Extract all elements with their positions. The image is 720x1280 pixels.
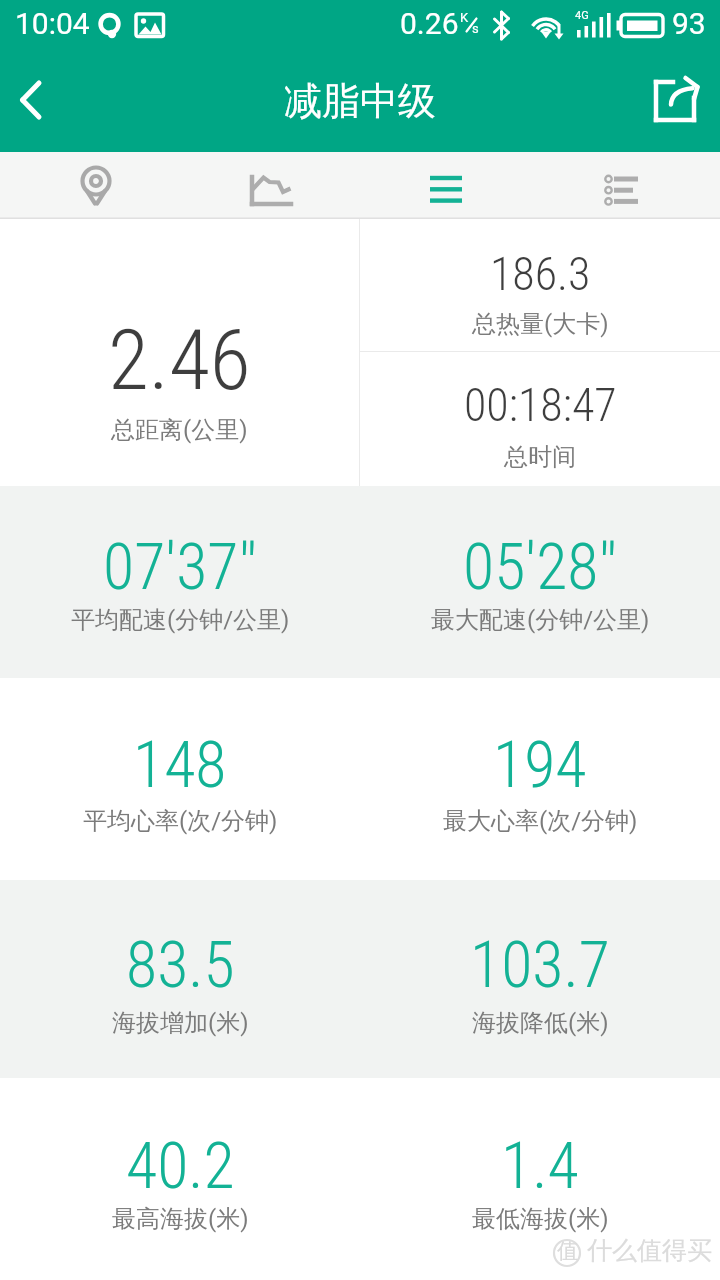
staticText: 总热量(大卡) [472,309,609,339]
staticText: 海拔降低(米) [472,1008,609,1038]
staticText: 103.7 [470,928,610,1003]
staticText: 值 [557,1238,578,1264]
staticText: 07'37" [103,530,257,605]
button[interactable] [0,152,180,219]
staticText: s [472,21,479,36]
staticText: 最大配速(分钟/公里) [431,605,650,635]
button[interactable] [360,152,540,219]
staticText: 194 [493,728,587,803]
staticText: 0.26 [400,6,459,41]
staticText: 平均心率(次/分钟) [83,806,278,836]
button[interactable] [640,50,720,152]
staticText: 40.2 [126,1129,235,1204]
staticText: 1.4 [501,1129,579,1204]
staticText: 减脂中级 [284,77,436,125]
staticText: 最大心率(次/分钟) [443,806,638,836]
button[interactable] [540,152,720,219]
staticText: 83.5 [126,928,235,1003]
button[interactable] [0,50,72,152]
staticText: 总时间 [504,442,576,472]
staticText: 4G [575,9,589,22]
staticText: 186.3 [490,247,591,301]
staticText: 148 [133,728,227,803]
staticText: 10:04 [15,6,90,41]
staticText: 93 [672,6,706,41]
staticText: 总距离(公里) [111,415,248,445]
staticText: 最高海拔(米) [112,1204,249,1234]
staticText: 平均配速(分钟/公里) [71,605,290,635]
staticText: 什么值得买 [587,1235,712,1266]
staticText: K [460,10,469,25]
button[interactable] [180,152,360,219]
staticText: 05'28" [463,530,617,605]
staticText: 海拔增加(米) [112,1008,249,1038]
staticText: 2.46 [108,311,251,409]
staticText: 最低海拔(米) [472,1204,609,1234]
staticText: 00:18:47 [464,378,617,432]
